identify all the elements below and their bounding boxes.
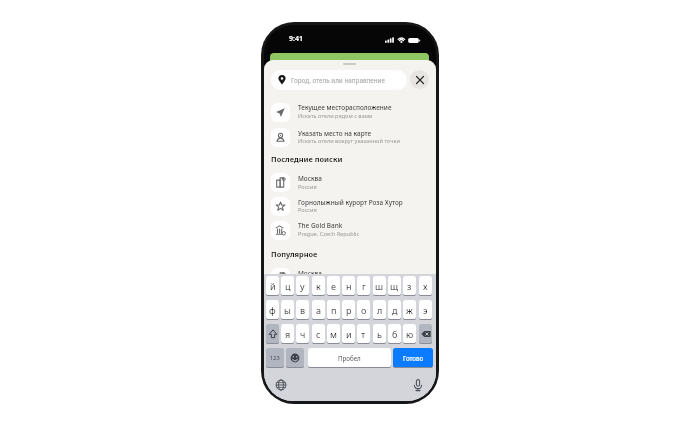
button[interactable] <box>419 324 432 343</box>
button[interactable] <box>271 197 290 216</box>
staticText: Prague, Czech Republic <box>298 230 360 238</box>
button[interactable] <box>410 70 429 89</box>
staticText: б <box>392 328 398 340</box>
staticText: Россия <box>298 206 317 214</box>
staticText: Пробел <box>338 354 361 362</box>
button[interactable]: с <box>312 324 325 343</box>
staticText: ю <box>406 328 414 340</box>
staticText: н <box>346 280 352 292</box>
button[interactable]: и <box>342 324 355 343</box>
staticText: Готово <box>403 354 424 362</box>
staticText: ж <box>406 304 413 316</box>
button[interactable] <box>271 268 290 287</box>
button[interactable]: т <box>357 324 370 343</box>
button[interactable]: щ <box>388 276 401 295</box>
button[interactable]: г <box>357 276 370 295</box>
button[interactable]: ь <box>373 324 386 343</box>
staticText: The Gold Bank <box>298 221 343 230</box>
button[interactable]: ю <box>403 324 416 343</box>
button[interactable]: з <box>403 276 416 295</box>
staticText: м <box>330 328 337 340</box>
staticText: х <box>423 280 428 292</box>
button[interactable]: к <box>312 276 325 295</box>
staticText: я <box>285 328 291 340</box>
button[interactable]: а <box>312 300 325 319</box>
button[interactable] <box>266 324 279 343</box>
button[interactable]: о <box>357 300 370 319</box>
button[interactable]: ф <box>266 300 279 319</box>
staticText: э <box>423 304 428 316</box>
staticText: а <box>316 304 322 316</box>
staticText: й <box>270 280 276 292</box>
staticText: з <box>407 280 412 292</box>
button[interactable]: в <box>296 300 309 319</box>
staticText: Текущее месторасположение <box>298 103 392 112</box>
staticText: ы <box>284 304 291 316</box>
button[interactable]: э <box>419 300 432 319</box>
button[interactable]: р <box>342 300 355 319</box>
button[interactable]: е <box>327 276 340 295</box>
button[interactable]: п <box>327 300 340 319</box>
staticText: ь <box>377 328 382 340</box>
staticText: Искать отели рядом с вами <box>298 112 373 120</box>
button[interactable]: у <box>296 276 309 295</box>
staticText: Последние поиски <box>271 154 343 164</box>
staticText: ц <box>285 280 291 292</box>
staticText: д <box>392 304 398 316</box>
staticText: Москва <box>298 174 322 183</box>
button[interactable]: я <box>281 324 294 343</box>
button[interactable]: Пробел <box>308 348 391 367</box>
button[interactable]: н <box>342 276 355 295</box>
staticText: Россия <box>298 183 317 191</box>
button[interactable] <box>273 377 288 392</box>
button[interactable]: Готово <box>393 348 433 367</box>
button[interactable]: ж <box>403 300 416 319</box>
button[interactable] <box>271 173 290 192</box>
staticText: л <box>377 304 383 316</box>
button[interactable]: 123 <box>266 348 284 367</box>
button[interactable]: л <box>373 300 386 319</box>
button[interactable]: м <box>327 324 340 343</box>
staticText: Популярное <box>271 249 318 259</box>
button[interactable]: ш <box>373 276 386 295</box>
button[interactable]: х <box>419 276 432 295</box>
button[interactable]: д <box>388 300 401 319</box>
staticText: к <box>316 280 321 292</box>
button[interactable] <box>271 103 290 122</box>
button[interactable]: ц <box>281 276 294 295</box>
staticText: у <box>300 280 305 292</box>
staticText: г <box>362 280 366 292</box>
staticText: Горнолыжный курорт Роза Хутор <box>298 198 403 207</box>
staticText: с <box>316 328 321 340</box>
staticText: ш <box>375 280 384 292</box>
staticText: 9:41 <box>289 34 303 44</box>
staticText: 123 <box>270 354 280 362</box>
button[interactable]: ы <box>281 300 294 319</box>
staticText: Город, отель или направление <box>291 76 385 85</box>
staticText: Указать место на карте <box>298 129 372 138</box>
button[interactable]: б <box>388 324 401 343</box>
staticText: п <box>331 304 337 316</box>
staticText: Россия <box>298 277 317 285</box>
staticText: т <box>361 328 366 340</box>
staticText: р <box>346 304 352 316</box>
button[interactable]: й <box>266 276 279 295</box>
staticText: Искать отели вокруг указанной точки <box>298 137 400 145</box>
button[interactable] <box>286 348 304 367</box>
staticText: в <box>300 304 306 316</box>
button[interactable] <box>410 377 425 392</box>
staticText: о <box>361 304 367 316</box>
staticText: ф <box>269 304 276 316</box>
staticText: и <box>346 328 352 340</box>
button[interactable] <box>271 128 290 147</box>
staticText: ч <box>300 328 306 340</box>
button[interactable] <box>271 221 290 240</box>
button[interactable]: ч <box>296 324 309 343</box>
staticText: щ <box>390 280 399 292</box>
button[interactable]: Город, отель или направление <box>271 70 407 90</box>
staticText: е <box>331 280 336 292</box>
staticText: Москва <box>298 269 322 278</box>
